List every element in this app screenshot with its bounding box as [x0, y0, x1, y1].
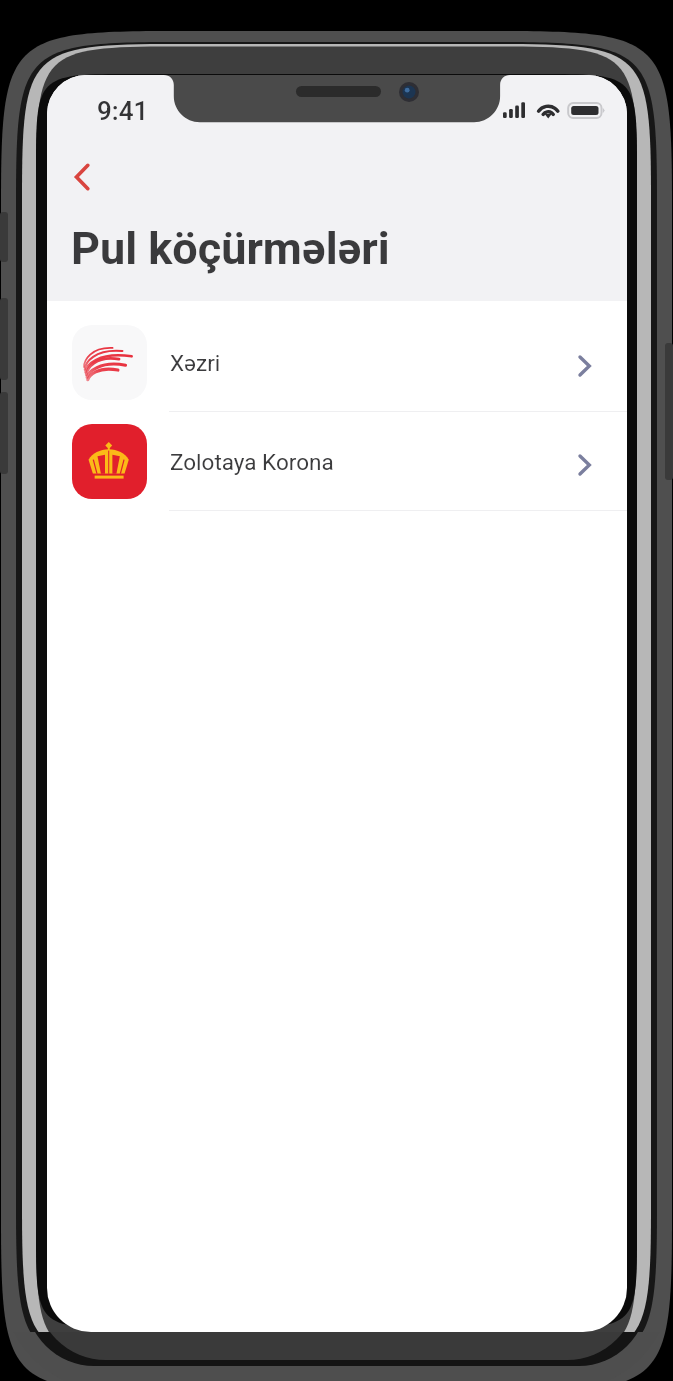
button[interactable]: Back [56, 147, 108, 207]
staticText: Pul köçürmələri [71, 222, 390, 275]
button[interactable]: Zolotaya Korona [47, 412, 627, 511]
staticText: 9:41 [97, 96, 149, 126]
staticText: Zolotaya Korona [170, 449, 334, 475]
staticText: Xəzri [170, 350, 221, 376]
button[interactable]: Xəzri [47, 313, 627, 412]
